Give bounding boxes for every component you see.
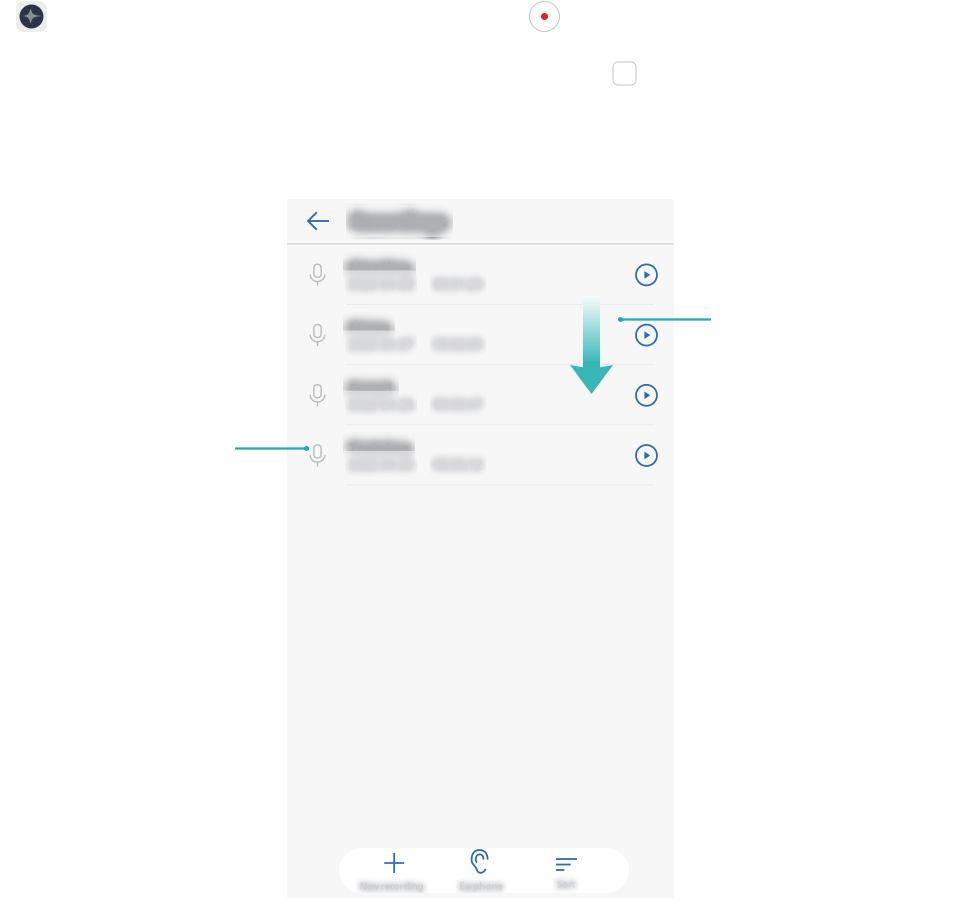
button[interactable]: Sort <box>523 848 609 893</box>
button[interactable]: Meeting <box>287 245 674 305</box>
staticText: 00:02:05 <box>434 336 482 352</box>
staticText: 00:01:23 <box>434 276 482 292</box>
staticText: 00:03:47 <box>434 396 482 412</box>
staticText: 00:05:12 <box>434 456 482 472</box>
button[interactable]: Training <box>287 425 674 486</box>
staticText: Training <box>349 438 409 458</box>
button[interactable]: Back <box>301 204 336 237</box>
staticText: New recording <box>360 880 424 892</box>
button[interactable]: Earphone <box>437 848 523 893</box>
staticText: 2022-04-28 <box>349 276 413 292</box>
button[interactable]: News <box>287 305 674 365</box>
staticText: 2022-04-25 <box>349 456 413 472</box>
staticText: 2022-04-26 <box>349 396 413 412</box>
staticText: Earphone <box>460 880 503 892</box>
staticText: Meeting <box>349 258 410 277</box>
button[interactable]: New recording <box>351 848 437 893</box>
staticText: News <box>349 318 389 337</box>
staticText: Song1 <box>349 378 393 398</box>
button[interactable]: Song1 <box>287 365 674 425</box>
staticText: 2022-04-27 <box>349 336 413 352</box>
staticText: Recordings <box>352 209 447 232</box>
staticText: Sort <box>557 878 575 890</box>
